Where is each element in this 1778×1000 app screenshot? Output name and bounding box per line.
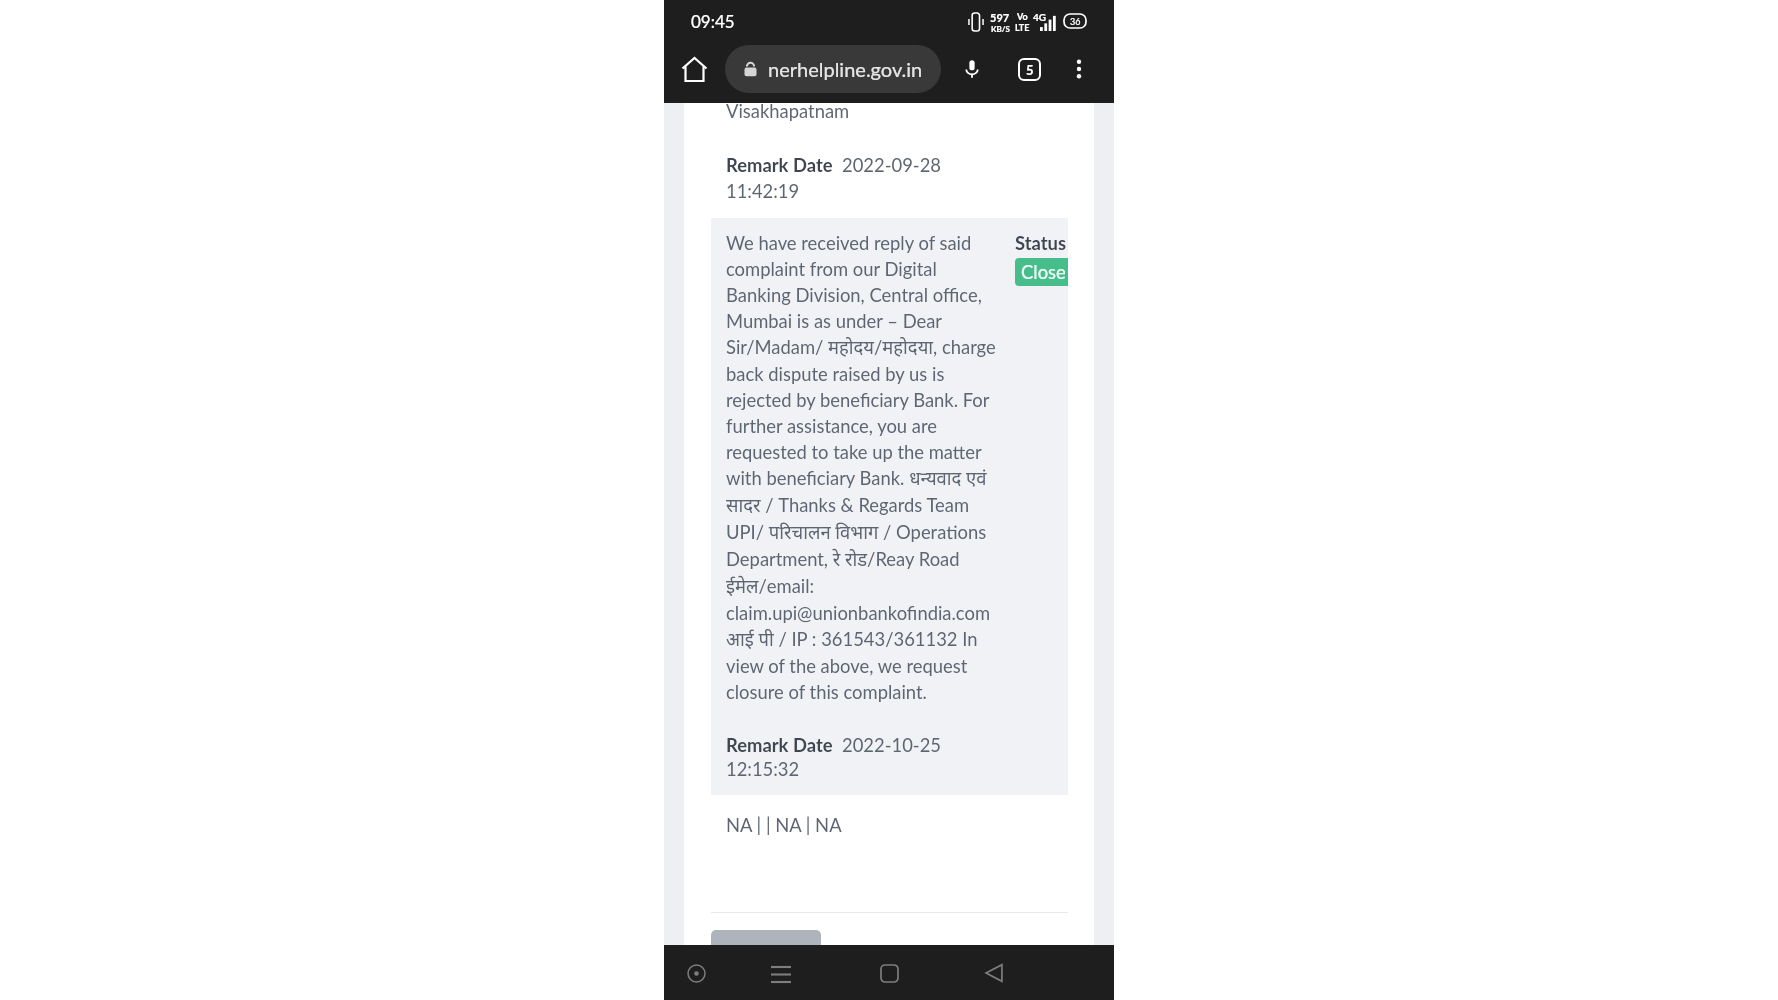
staticText: Status bbox=[1015, 232, 1067, 254]
staticText: We have received reply of said complaint… bbox=[726, 232, 1016, 703]
button[interactable]: Home bbox=[672, 47, 716, 91]
staticText: 2022-10-25 bbox=[842, 734, 941, 756]
staticText: 2022-09-28 bbox=[842, 154, 941, 176]
staticText: 5 bbox=[1026, 62, 1034, 78]
staticText: 09:45 bbox=[691, 11, 735, 31]
staticText: Remark Date bbox=[726, 734, 833, 756]
button[interactable]: Close bbox=[1015, 258, 1068, 286]
button[interactable]: Menu bbox=[757, 949, 805, 997]
staticText: 36 bbox=[1070, 16, 1081, 27]
staticText: 4G bbox=[1033, 11, 1047, 23]
button[interactable]: Back bbox=[970, 949, 1018, 997]
staticText: 597 bbox=[990, 11, 1010, 24]
staticText: Vo bbox=[1017, 11, 1028, 22]
button[interactable] bbox=[711, 930, 821, 976]
staticText: Remark Date bbox=[726, 154, 833, 176]
staticText: 12:15:32 bbox=[726, 758, 800, 780]
staticText: LTE bbox=[1015, 22, 1030, 33]
staticText: 11:42:19 bbox=[726, 180, 800, 202]
staticText: NA | | NA | NA bbox=[726, 814, 842, 836]
button[interactable]: Tabs bbox=[1007, 47, 1051, 91]
button[interactable]: Home bbox=[865, 949, 913, 997]
button[interactable]: nerhelpline.gov.in bbox=[725, 45, 941, 93]
staticText: Close bbox=[1021, 261, 1066, 283]
staticText: KB/S bbox=[991, 24, 1010, 34]
button[interactable]: More options bbox=[1057, 47, 1101, 91]
button[interactable]: Assistant bbox=[672, 949, 720, 997]
button[interactable]: Voice search bbox=[950, 47, 994, 91]
staticText: nerhelpline.gov.in bbox=[768, 57, 923, 81]
staticText: Visakhapatnam bbox=[726, 100, 850, 122]
